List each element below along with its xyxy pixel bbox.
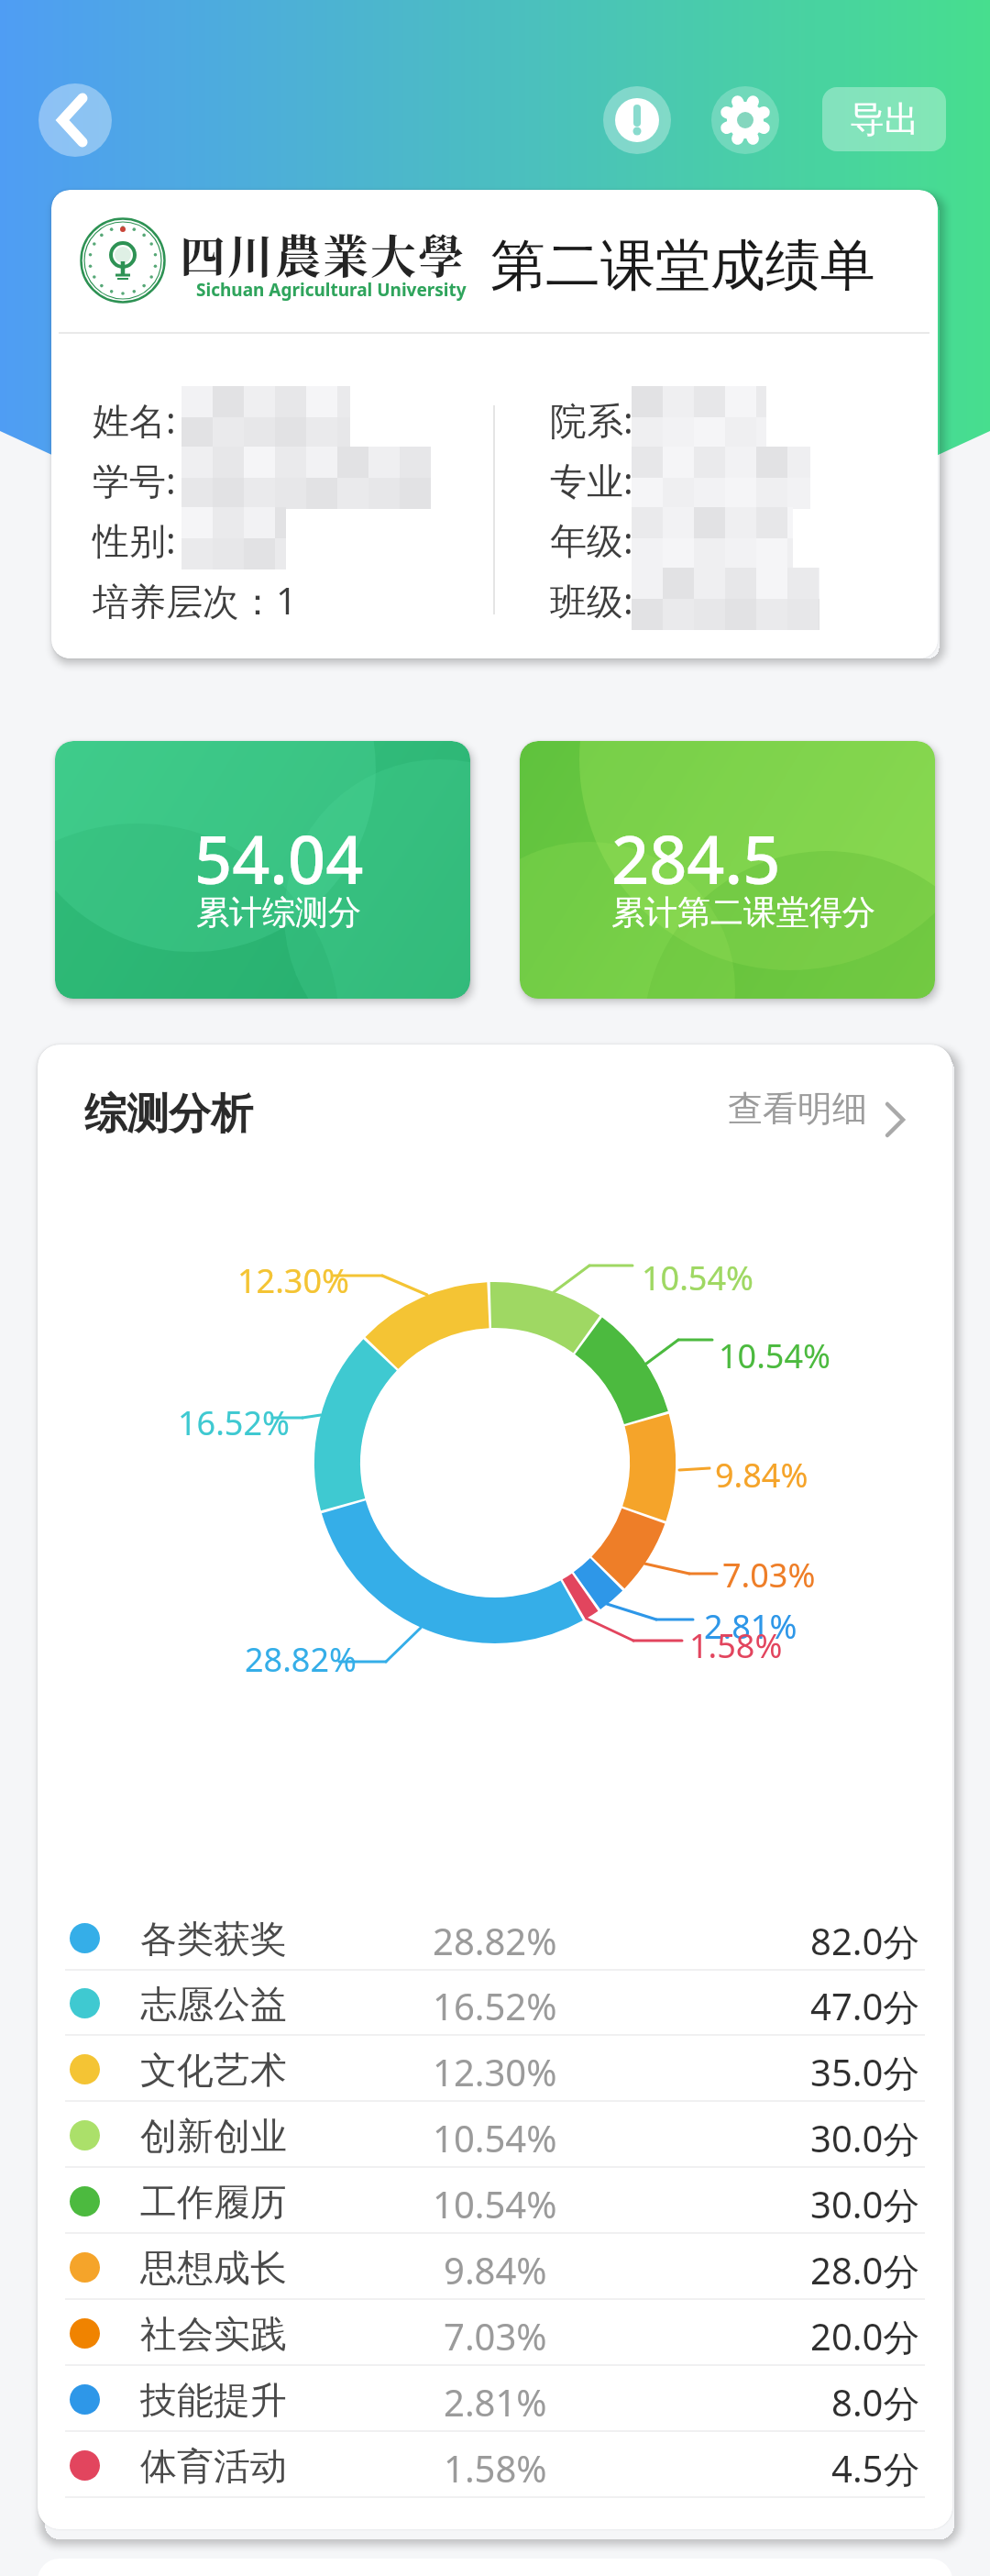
button[interactable]: 思想成长 [65,2235,925,2299]
button[interactable] [38,83,112,157]
staticText: 20.0分 [810,2311,920,2355]
staticText: 1.58% [689,1623,783,1668]
staticText: 培养层次：1 [93,575,297,625]
staticText: 性别: [93,514,176,565]
staticText: 查看明细 [728,1087,867,1131]
staticText: 47.0分 [810,1981,920,2025]
button[interactable]: 工作履历 [65,2169,925,2233]
staticText: Sichuan Agricultural University [196,278,467,302]
staticText: 82.0分 [810,1916,920,1960]
staticText: 思想成长 [140,2245,287,2291]
staticText: 30.0分 [810,2113,920,2157]
staticText: 班级: [550,575,633,625]
staticText: 四川農業大學 [180,220,466,286]
staticText: 4.5分 [831,2443,920,2487]
staticText: 各类获奖 [140,1916,287,1962]
staticText: 累计综测分 [196,891,361,933]
staticText: 学号: [93,455,176,505]
button[interactable]: 各类获奖 [65,1906,925,1970]
staticText: 54.04 [194,813,364,903]
staticText: 28.82% [245,1637,357,1682]
staticText: 12.30% [433,2047,557,2091]
button[interactable]: 技能提升 [65,2367,925,2431]
staticText: 10.54% [719,1333,830,1378]
staticText: 体育活动 [140,2443,287,2489]
staticText: 2.81% [444,2377,547,2421]
staticText: 第二课堂成绩单 [490,231,875,301]
staticText: 7.03% [722,1553,816,1598]
button[interactable]: 体育活动 [65,2433,925,2497]
staticText: 16.52% [433,1981,557,2025]
staticText: 姓名: [93,394,176,445]
staticText: 专业: [550,455,633,505]
staticText: 284.5 [611,813,781,903]
staticText: 创新创业 [140,2113,287,2159]
staticText: 综测分析 [84,1088,253,1141]
staticText: 志愿公益 [140,1981,287,2027]
button[interactable]: 社会实践 [65,2301,925,2365]
staticText: 9.84% [715,1453,808,1498]
staticText: 9.84% [444,2245,547,2289]
button[interactable] [711,86,779,154]
staticText: 技能提升 [140,2377,287,2423]
staticText: 8.0分 [831,2377,920,2421]
staticText: 30.0分 [810,2179,920,2223]
staticText: 7.03% [444,2311,547,2355]
staticText: 10.54% [433,2113,557,2157]
staticText: 工作履历 [140,2179,287,2225]
button[interactable]: 创新创业 [65,2103,925,2167]
staticText: 2.81% [704,1604,797,1649]
staticText: 28.0分 [810,2245,920,2289]
staticText: 28.82% [433,1916,557,1960]
button[interactable]: 查看明细 [716,1081,918,1136]
staticText: 年级: [550,514,633,565]
staticText: 文化艺术 [140,2047,287,2093]
staticText: 12.30% [237,1258,349,1303]
staticText: 导出 [850,97,919,141]
button[interactable]: 志愿公益 [65,1971,925,2035]
staticText: 院系: [550,394,633,445]
button[interactable] [603,86,671,154]
button[interactable]: 导出 [822,87,946,151]
staticText: 10.54% [642,1255,753,1300]
staticText: 35.0分 [810,2047,920,2091]
staticText: 社会实践 [140,2311,287,2357]
staticText: 16.52% [178,1400,290,1445]
staticText: 10.54% [433,2179,557,2223]
staticText: 累计第二课堂得分 [611,891,875,933]
button[interactable]: 文化艺术 [65,2037,925,2101]
staticText: 1.58% [444,2443,547,2487]
